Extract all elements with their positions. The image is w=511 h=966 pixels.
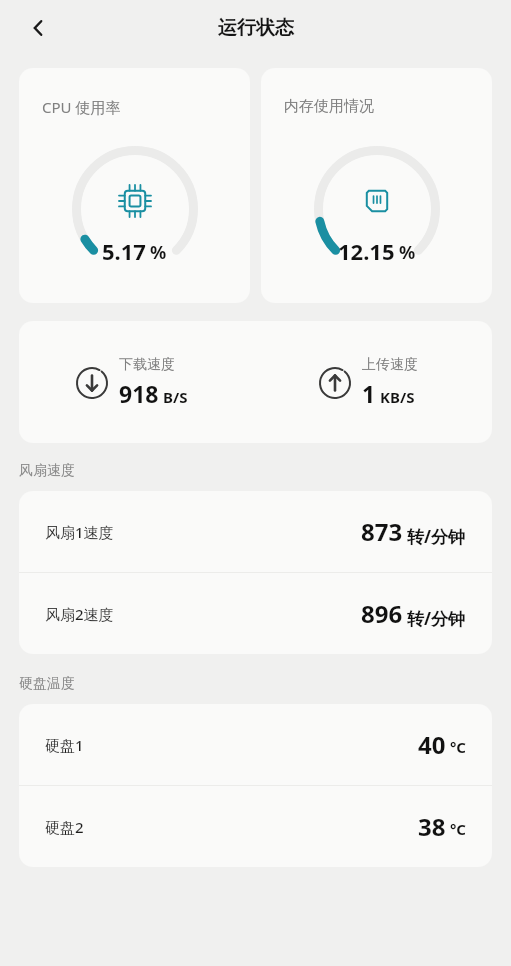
staticText: 风扇1速度 [45, 522, 114, 542]
staticText: 硬盘1 [45, 735, 84, 755]
staticText: % [150, 240, 167, 265]
button[interactable]: 返回 [16, 6, 60, 50]
staticText: °C [450, 819, 466, 839]
staticText: 下载速度 [119, 356, 175, 374]
staticText: 38 [418, 810, 446, 843]
button[interactable]: 硬盘2 [19, 786, 492, 867]
staticText: 918 [119, 378, 159, 409]
staticText: 运行状态 [218, 16, 294, 40]
button[interactable]: 内存使用情况 [261, 68, 492, 303]
staticText: % [399, 240, 416, 265]
button[interactable]: 下载 [19, 321, 492, 443]
staticText: 内存使用情况 [284, 97, 374, 116]
button[interactable]: CPU 使用率 [19, 68, 250, 303]
staticText: KB/S [380, 387, 415, 407]
button[interactable]: 硬盘1 [19, 704, 492, 785]
other: 上传 [318, 366, 352, 400]
staticText: 上传速度 [362, 356, 418, 374]
staticText: 40 [418, 728, 446, 761]
button[interactable]: 风扇2速度 [19, 573, 492, 654]
staticText: CPU 使用率 [42, 97, 121, 117]
staticText: 风扇速度 [19, 462, 75, 480]
staticText: 873 [361, 515, 403, 548]
staticText: 风扇2速度 [45, 604, 114, 624]
staticText: 硬盘2 [45, 817, 84, 837]
staticText: °C [450, 737, 466, 757]
staticText: 12.15 [338, 236, 395, 266]
button[interactable]: 风扇1速度 [19, 491, 492, 572]
other: 下载 [75, 366, 109, 400]
staticText: 转/分钟 [407, 525, 466, 548]
staticText: 5.17 [102, 236, 146, 266]
staticText: 896 [361, 597, 403, 630]
staticText: B/S [163, 387, 188, 407]
staticText: 硬盘温度 [19, 675, 75, 693]
staticText: 1 [362, 378, 376, 409]
staticText: 转/分钟 [407, 607, 466, 630]
